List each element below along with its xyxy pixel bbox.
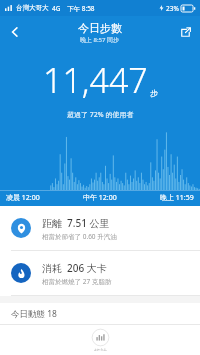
button[interactable]: Calories [0,251,200,296]
button[interactable]: Back [0,17,30,47]
button[interactable]: Distance [0,206,200,251]
staticText: 206 大卡 [67,261,107,275]
staticText: 台灣大哥大 [16,4,49,12]
staticText: 相當於節省了 0.60 升汽油 [42,232,117,241]
other: Distance [11,218,31,238]
staticText: 相當於燃燒了 27 克脂肪 [42,277,112,286]
staticText: 凌晨 12:00 [6,193,40,203]
button[interactable]: 統計 [88,325,113,355]
button[interactable]: Share [170,17,200,47]
staticText: 距離 [42,217,62,230]
staticText: 晚上 8:57 同步 [80,36,120,44]
staticText: 11,447 [43,57,148,103]
staticText: 晚上 11:59 [160,193,194,203]
staticText: 今日步數 [78,21,122,35]
staticText: 下午 8:58 [67,4,95,13]
staticText: 今日動態 18 [11,308,57,320]
staticText: 消耗 [42,262,62,275]
staticText: 23% [166,4,179,13]
staticText: 步 [150,88,158,98]
other: Calories [11,263,31,283]
staticText: 7.51 公里 [67,216,110,230]
staticText: 超過了 72% 的使用者 [67,110,134,120]
button[interactable]: 今日動態 18 [0,303,200,325]
staticText: 統計 [94,348,107,351]
staticText: 中午 12:00 [83,193,117,203]
staticText: 4G [52,4,61,13]
